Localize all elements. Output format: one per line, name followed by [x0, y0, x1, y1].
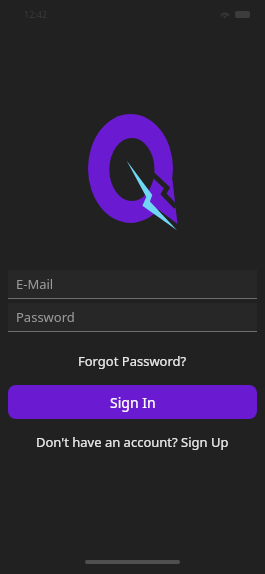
- staticText: Password: [16, 308, 75, 326]
- button[interactable]: Don't have an account? Sign Up: [30, 431, 235, 453]
- button[interactable]: E-Mail: [8, 270, 257, 298]
- staticText: 12:42: [24, 8, 48, 20]
- button[interactable]: Password: [8, 303, 257, 331]
- staticText: Sign In: [110, 393, 156, 412]
- staticText: E-Mail: [16, 275, 54, 293]
- button[interactable]: Sign In: [8, 385, 257, 419]
- button[interactable]: Forgot Password?: [72, 350, 193, 372]
